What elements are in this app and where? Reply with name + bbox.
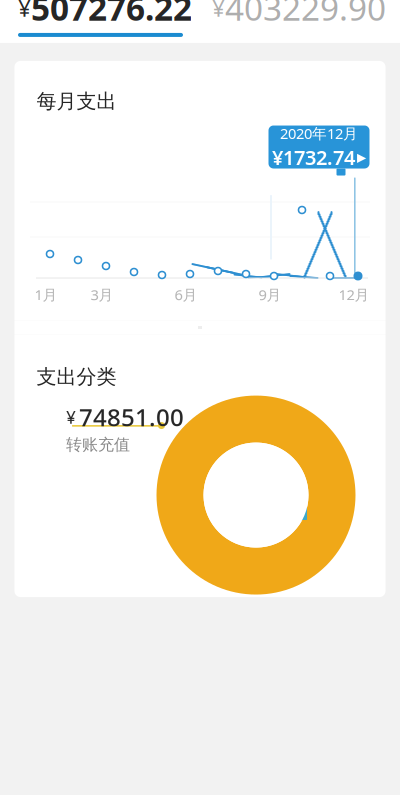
staticText: 2020年12月 [280, 123, 358, 143]
staticText: 支出分类 [36, 364, 116, 389]
staticText: 403229.90 [225, 0, 386, 30]
staticText: 74851.00 [79, 401, 184, 433]
button[interactable]: 收入 [200, 0, 400, 43]
staticText: 12月 [338, 285, 369, 304]
staticText: 3月 [90, 285, 113, 304]
staticText: 转账充值 [66, 435, 130, 455]
staticText: ▶ [357, 150, 366, 164]
staticText: 507276.22 [31, 0, 192, 30]
staticText: ¥ [212, 0, 225, 23]
staticText: ¥1732.74 [272, 144, 355, 171]
staticText: 1月 [34, 285, 57, 304]
staticText: 9月 [258, 285, 281, 304]
staticText: 每月支出 [36, 89, 116, 113]
button[interactable]: 支出 [0, 0, 200, 43]
staticText: ¥ [66, 405, 76, 428]
staticText: ¥ [18, 0, 31, 23]
staticText: 6月 [174, 285, 197, 304]
